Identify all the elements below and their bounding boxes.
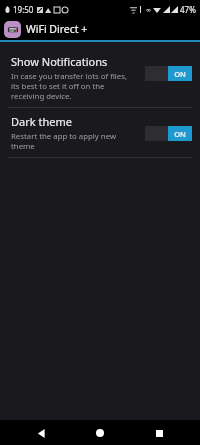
staticText: ON [174, 129, 186, 139]
button[interactable]: Recents [150, 424, 168, 442]
staticText: ∞ [146, 6, 151, 13]
staticText: Show Notifications [11, 54, 108, 69]
button[interactable]: Dark theme [0, 108, 200, 157]
staticText: Dark theme [11, 114, 72, 129]
button[interactable]: Toggle on [145, 66, 192, 81]
staticText: WiFi Direct + [26, 22, 88, 36]
staticText: ON [174, 69, 186, 79]
button[interactable]: Home [91, 424, 109, 442]
button[interactable]: Toggle on [145, 126, 192, 141]
staticText: In case you transfer lots of files, its … [11, 71, 131, 101]
staticText: Restart the app to apply new theme [11, 131, 121, 151]
button[interactable]: Back [32, 424, 50, 442]
staticText: 47% [180, 4, 196, 15]
button[interactable]: Show Notifications [0, 48, 200, 107]
staticText: 19:50 [13, 4, 34, 15]
